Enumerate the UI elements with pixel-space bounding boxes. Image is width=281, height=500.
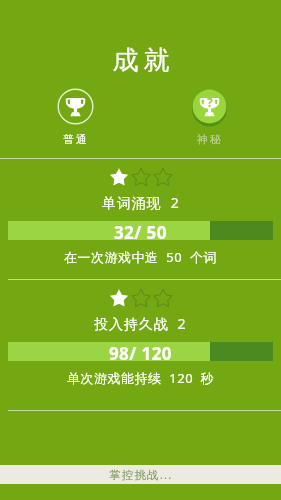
- button[interactable]: 普通 achievements: [21, 88, 129, 146]
- staticText: 32/ 50: [114, 221, 167, 240]
- button[interactable]: 投入持久战 2: [0, 280, 281, 400]
- staticText: 98/ 120: [109, 342, 172, 361]
- button[interactable]: 单词涌现 2: [0, 159, 281, 279]
- staticText: 单次游戏能持续 120 秒: [67, 369, 215, 387]
- button[interactable]: 神秘 achievements: [155, 88, 263, 146]
- staticText: 在一次游戏中造 50 个词: [64, 248, 217, 266]
- staticText: 投入持久战 2: [94, 314, 187, 333]
- button[interactable]: 掌控挑战...: [0, 465, 281, 484]
- staticText: 单词涌现 2: [102, 193, 180, 212]
- staticText: 普通: [63, 133, 90, 146]
- staticText: ?: [207, 94, 213, 110]
- staticText: 掌控挑战...: [109, 467, 173, 483]
- staticText: 神秘: [197, 133, 224, 146]
- staticText: 成就: [110, 44, 172, 77]
